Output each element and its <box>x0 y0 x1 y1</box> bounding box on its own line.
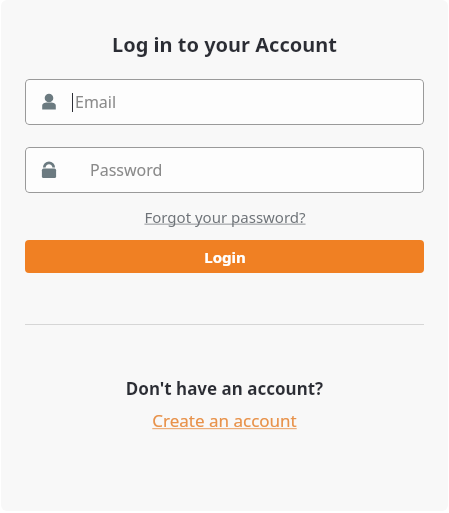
other: Password <box>39 160 59 180</box>
staticText: Login <box>204 247 246 267</box>
button[interactable]: Login <box>25 240 424 273</box>
button[interactable]: Forgot your password? <box>144 207 306 227</box>
staticText: Log in to your Account <box>1 31 448 58</box>
staticText: Email <box>75 91 117 113</box>
staticText: Password <box>90 159 163 181</box>
button[interactable]: Create an account <box>152 409 297 432</box>
staticText: Don't have an account? <box>1 377 448 400</box>
button[interactable]: Email <box>25 79 424 125</box>
other: Email <box>39 92 59 112</box>
button[interactable]: Password <box>25 147 424 193</box>
